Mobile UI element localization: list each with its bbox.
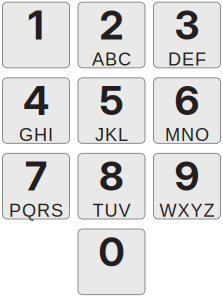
staticText: 2 — [99, 1, 123, 49]
staticText: 9 — [174, 152, 199, 200]
staticText: JKL — [95, 125, 128, 145]
button[interactable]: 5 JKL — [78, 78, 145, 143]
staticText: 0 — [98, 227, 124, 276]
button[interactable]: 9 WXYZ — [153, 153, 220, 219]
staticText: PQRS — [9, 200, 63, 221]
staticText: 4 — [23, 76, 49, 125]
staticText: DEF — [168, 49, 206, 69]
button[interactable]: 0 — [78, 229, 145, 295]
button[interactable]: 1 — [2, 2, 69, 68]
button[interactable]: 8 TUV — [78, 153, 145, 219]
staticText: GHI — [19, 125, 53, 145]
staticText: 1 — [28, 1, 44, 49]
staticText: MNO — [165, 125, 209, 145]
button[interactable]: 4 GHI — [2, 78, 69, 143]
button[interactable]: 6 MNO — [153, 78, 220, 143]
staticText: TUV — [92, 200, 130, 221]
staticText: 8 — [99, 152, 124, 200]
staticText: WXYZ — [159, 200, 214, 221]
staticText: 7 — [25, 152, 47, 200]
button[interactable]: 7 PQRS — [2, 153, 69, 219]
staticText: 6 — [174, 76, 199, 125]
button[interactable]: 2 ABC — [78, 2, 145, 68]
staticText: 3 — [174, 1, 199, 49]
staticText: ABC — [92, 49, 131, 69]
button[interactable]: 3 DEF — [153, 2, 220, 68]
staticText: 5 — [99, 76, 123, 125]
